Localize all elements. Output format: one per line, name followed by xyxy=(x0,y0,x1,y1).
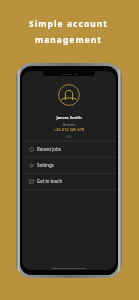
button[interactable]: Recent jobs xyxy=(22,141,116,157)
staticText: Edit xyxy=(22,135,116,139)
staticText: Recent jobs xyxy=(37,146,61,152)
staticText: +32 412 345 678 xyxy=(22,127,116,132)
staticText: Settings xyxy=(37,162,54,168)
staticText: Simple account management xyxy=(0,18,138,45)
staticText: Mechanic xyxy=(22,123,116,127)
staticText: James Smith xyxy=(22,115,116,121)
button[interactable]: Get in touch xyxy=(22,173,116,189)
button[interactable]: Settings xyxy=(22,157,116,173)
staticText: Get in touch xyxy=(37,178,63,184)
